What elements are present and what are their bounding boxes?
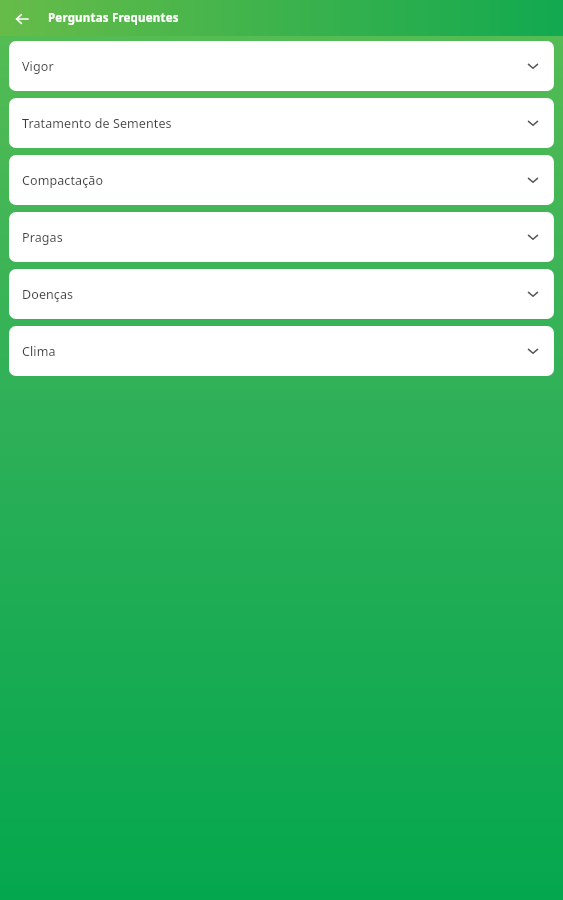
staticText: Doenças (22, 286, 518, 303)
button[interactable]: Tratamento de Sementes (9, 98, 554, 148)
staticText: Compactação (22, 172, 518, 189)
staticText: Pragas (22, 229, 518, 246)
staticText: Perguntas Frequentes (48, 10, 179, 26)
button[interactable]: Doenças (9, 269, 554, 319)
button[interactable]: Vigor (9, 41, 554, 91)
staticText: Tratamento de Sementes (22, 115, 518, 132)
button[interactable]: Back (9, 6, 34, 31)
button[interactable]: Compactação (9, 155, 554, 205)
button[interactable]: Clima (9, 326, 554, 376)
staticText: Clima (22, 343, 518, 360)
staticText: Vigor (22, 58, 518, 75)
button[interactable]: Pragas (9, 212, 554, 262)
